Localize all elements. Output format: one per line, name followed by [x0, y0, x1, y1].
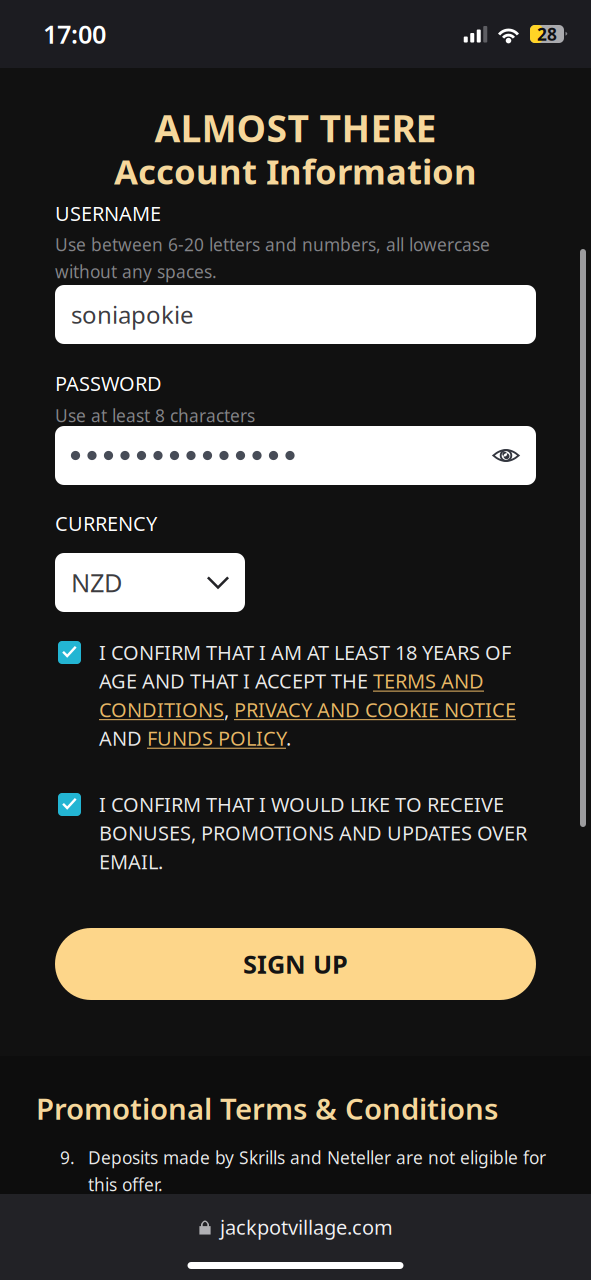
- staticText: CURRENCY: [55, 510, 157, 537]
- staticText: soniapokie: [71, 299, 194, 330]
- button[interactable]: Confirm age and terms: [58, 641, 81, 664]
- staticText: I CONFIRM THAT I WOULD LIKE TO RECEIVE B…: [99, 791, 527, 875]
- staticText: 9.: [60, 1146, 75, 1169]
- staticText: USERNAME: [55, 200, 161, 227]
- staticText: PASSWORD: [55, 370, 162, 397]
- staticText: NZD: [71, 566, 122, 599]
- button[interactable]: jackpotvillage.com: [0, 1208, 591, 1246]
- button[interactable]: NZD: [55, 553, 245, 612]
- staticText: 17:00: [43, 17, 106, 51]
- staticText: I CONFIRM THAT I AM AT LEAST 18 YEARS OF…: [99, 639, 516, 751]
- button[interactable]: SIGN UP: [55, 928, 536, 1000]
- staticText: Use between 6-20 letters and numbers, al…: [55, 233, 490, 283]
- staticText: Deposits made by Skrills and Neteller ar…: [88, 1146, 546, 1196]
- staticText: Use at least 8 characters: [55, 404, 255, 427]
- staticText: 28: [537, 22, 557, 45]
- button[interactable]: Show password: [492, 442, 520, 468]
- button[interactable]: Receive bonuses and promotions: [58, 793, 81, 816]
- staticText: jackpotvillage.com: [220, 1214, 393, 1240]
- staticText: Account Information: [114, 148, 477, 194]
- staticText: SIGN UP: [243, 947, 348, 981]
- staticText: Promotional Terms & Conditions: [36, 1089, 498, 1128]
- staticText: ALMOST THERE: [154, 103, 436, 153]
